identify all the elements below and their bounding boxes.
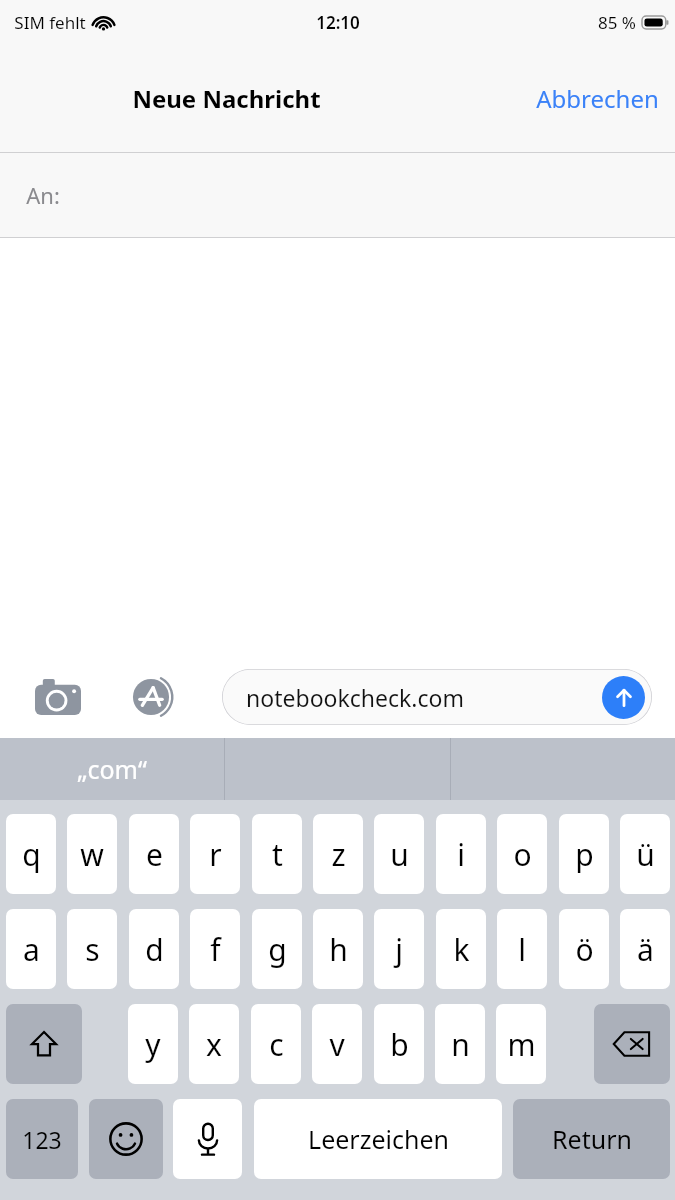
staticText: d bbox=[145, 929, 164, 970]
staticText: p bbox=[575, 834, 594, 875]
button[interactable]: c bbox=[251, 1004, 301, 1084]
staticText: u bbox=[390, 834, 409, 875]
staticText: i bbox=[457, 834, 465, 875]
staticText: An: bbox=[26, 180, 60, 210]
button[interactable]: ö bbox=[559, 909, 609, 989]
staticText: ü bbox=[636, 834, 655, 875]
button[interactable]: An: bbox=[0, 153, 675, 237]
staticText: e bbox=[146, 834, 163, 875]
staticText: z bbox=[331, 834, 346, 875]
button[interactable]: t bbox=[252, 814, 302, 894]
button[interactable]: m bbox=[496, 1004, 546, 1084]
staticText: v bbox=[329, 1024, 345, 1065]
staticText: y bbox=[145, 1024, 161, 1065]
staticText: Leerzeichen bbox=[308, 1122, 449, 1156]
staticText: j bbox=[395, 929, 403, 970]
staticText: m bbox=[507, 1024, 536, 1065]
button[interactable]: Emoji bbox=[89, 1099, 163, 1179]
staticText: ö bbox=[575, 929, 594, 970]
staticText: n bbox=[451, 1024, 470, 1065]
button[interactable]: h bbox=[313, 909, 363, 989]
button[interactable]: j bbox=[374, 909, 424, 989]
staticText: x bbox=[206, 1024, 222, 1065]
staticText: Return bbox=[552, 1122, 632, 1156]
staticText: c bbox=[269, 1024, 284, 1065]
staticText: g bbox=[268, 929, 287, 970]
staticText: „com“ bbox=[77, 752, 147, 786]
staticText: Neue Nachricht bbox=[132, 82, 321, 115]
staticText: b bbox=[390, 1024, 409, 1065]
staticText: 85 % bbox=[598, 11, 636, 34]
staticText: h bbox=[329, 929, 348, 970]
button[interactable]: v bbox=[312, 1004, 362, 1084]
staticText: 12:10 bbox=[316, 11, 360, 34]
button[interactable]: e bbox=[129, 814, 179, 894]
staticText: notebookcheck.com bbox=[246, 682, 464, 713]
button[interactable]: App Store bbox=[127, 669, 183, 725]
staticText: w bbox=[80, 834, 104, 875]
button[interactable]: Umschalt bbox=[6, 1004, 82, 1084]
button[interactable]: n bbox=[435, 1004, 485, 1084]
button[interactable]: Abbrechen bbox=[520, 74, 675, 123]
staticText: q bbox=[22, 834, 41, 875]
button[interactable]: i bbox=[436, 814, 486, 894]
staticText: r bbox=[209, 834, 222, 875]
button[interactable]: w bbox=[67, 814, 117, 894]
staticText: 123 bbox=[22, 1124, 62, 1155]
button[interactable]: Löschen bbox=[594, 1004, 670, 1084]
button[interactable]: Senden bbox=[602, 676, 645, 719]
button[interactable]: 123 bbox=[6, 1099, 78, 1179]
button[interactable]: Leerzeichen bbox=[254, 1099, 502, 1179]
staticText: f bbox=[210, 929, 221, 970]
staticText: Abbrechen bbox=[536, 82, 659, 115]
button[interactable]: f bbox=[190, 909, 240, 989]
staticText: t bbox=[272, 834, 283, 875]
button[interactable]: d bbox=[129, 909, 179, 989]
button[interactable]: u bbox=[374, 814, 424, 894]
staticText: SIM fehlt bbox=[14, 11, 86, 34]
staticText: l bbox=[518, 929, 526, 970]
staticText: ä bbox=[637, 929, 654, 970]
staticText: k bbox=[453, 929, 470, 970]
button[interactable]: ä bbox=[620, 909, 670, 989]
button[interactable]: ü bbox=[620, 814, 670, 894]
button[interactable]: l bbox=[497, 909, 547, 989]
button[interactable]: r bbox=[190, 814, 240, 894]
button[interactable]: Return bbox=[513, 1099, 670, 1179]
button[interactable]: z bbox=[313, 814, 363, 894]
button[interactable]: s bbox=[67, 909, 117, 989]
button[interactable]: k bbox=[436, 909, 486, 989]
button[interactable]: g bbox=[252, 909, 302, 989]
staticText: o bbox=[513, 834, 532, 875]
button[interactable]: notebookcheck.com bbox=[222, 669, 652, 725]
button[interactable]: a bbox=[6, 909, 56, 989]
staticText: a bbox=[23, 929, 40, 970]
staticText: s bbox=[85, 929, 100, 970]
button[interactable]: x bbox=[189, 1004, 239, 1084]
button[interactable]: Kamera bbox=[30, 669, 86, 725]
button[interactable]: q bbox=[6, 814, 56, 894]
button[interactable]: b bbox=[374, 1004, 424, 1084]
button[interactable]: o bbox=[497, 814, 547, 894]
button[interactable]: „com“ bbox=[0, 738, 224, 800]
button[interactable]: y bbox=[128, 1004, 178, 1084]
button[interactable]: p bbox=[559, 814, 609, 894]
button[interactable]: Diktieren bbox=[173, 1099, 242, 1179]
